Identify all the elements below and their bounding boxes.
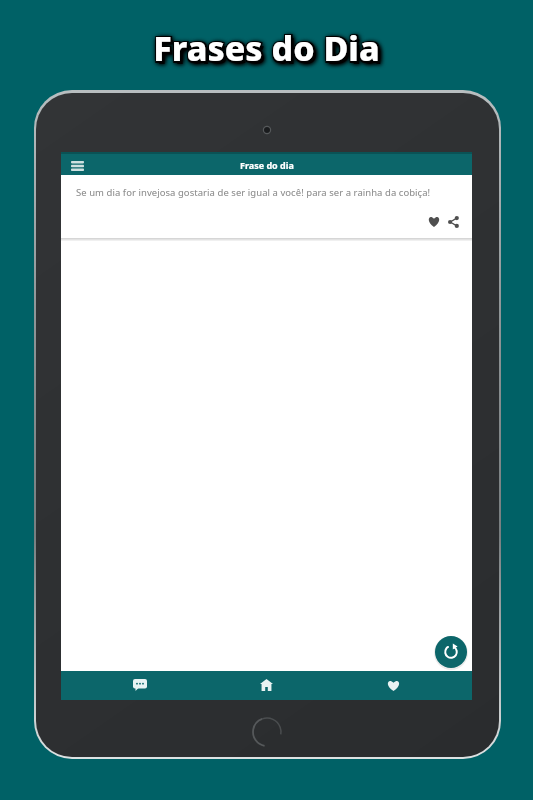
button[interactable] — [372, 671, 415, 699]
button[interactable] — [425, 213, 442, 230]
staticText: Se um dia for invejosa gostaria de ser i… — [76, 186, 431, 199]
button[interactable] — [435, 636, 467, 668]
staticText: Frases do Dia — [0, 25, 533, 71]
button[interactable] — [245, 671, 288, 699]
button[interactable] — [445, 213, 462, 230]
button[interactable]: Se um dia for invejosa gostaria de ser i… — [61, 175, 472, 238]
staticText: Frases do Dia — [0, 27, 532, 73]
staticText: Frase do dia — [240, 159, 294, 171]
staticText: Frases do Dia — [3, 28, 533, 74]
staticText: Frases do Dia — [2, 24, 533, 70]
button[interactable] — [65, 156, 89, 176]
staticText: Frases do Dia — [0, 24, 532, 70]
button[interactable] — [118, 671, 161, 699]
